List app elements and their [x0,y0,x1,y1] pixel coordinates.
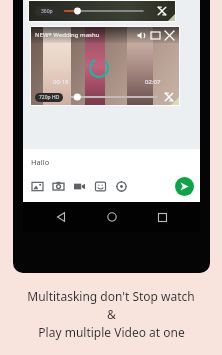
button[interactable]: 720p HD [35,93,63,102]
button[interactable]: Home [99,204,125,230]
button[interactable]: Picture in picture [150,30,161,41]
staticText: Play multiple Video at one [38,324,185,340]
button[interactable]: Location [113,178,129,194]
button[interactable]: Camera [50,178,66,194]
button[interactable]: Fullscreen [163,91,175,103]
staticText: NEW* Wedding mashu [35,31,100,39]
staticText: Multitasking don't Stop watch [27,288,195,304]
staticText: 360p [41,8,53,15]
button[interactable]: Recents [149,204,175,230]
button[interactable]: Sticker [92,178,108,194]
button[interactable]: Close [164,30,175,41]
staticText: Hallo [31,157,50,167]
button[interactable]: Video [71,178,87,194]
staticText: 00:16 [53,78,69,86]
staticText: 720p HD [39,94,60,101]
button[interactable]: Mute [136,30,147,41]
button[interactable]: Back [48,204,74,230]
staticText: & [107,306,116,322]
button[interactable]: Gallery [29,178,45,194]
staticText: 02:07 [145,78,161,86]
button[interactable]: Send [175,177,194,196]
